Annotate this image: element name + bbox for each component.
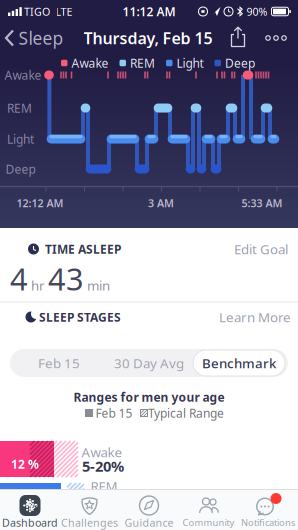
staticText: Feb 15 (38, 354, 80, 372)
staticText: Awake (81, 443, 122, 461)
staticText: Notifications (241, 516, 295, 529)
staticText: Awake (71, 55, 108, 71)
button[interactable]: Benchmark (192, 349, 286, 377)
button[interactable]: Guidance (119, 490, 178, 530)
staticText: TIGO (24, 4, 50, 19)
staticText: Light (7, 131, 34, 147)
staticText: Thursday, Feb 15 (83, 27, 212, 49)
button[interactable]: Edit Goal (229, 237, 293, 261)
staticText: Deep (5, 161, 35, 177)
button[interactable]: Feb 15 (13, 349, 105, 377)
staticText: Typical Range (148, 405, 224, 421)
staticText: REM (7, 100, 32, 116)
button[interactable]: Community (179, 490, 238, 530)
staticText: 30 Day Avg (114, 354, 184, 372)
staticText: 11:12 AM (122, 3, 175, 19)
button[interactable]: Back (0, 23, 73, 53)
staticText: Sleep (18, 26, 63, 49)
button[interactable]: Learn More (219, 305, 291, 329)
staticText: Awake (4, 67, 41, 83)
staticText: hr (31, 276, 45, 294)
staticText: 12 % (11, 456, 39, 472)
staticText: 12:12 AM (16, 196, 63, 210)
staticText: REM (90, 477, 117, 495)
staticText: SLEEP STAGES (39, 309, 121, 325)
staticText: TIME ASLEEP (45, 241, 121, 257)
staticText: 3 AM (148, 196, 174, 210)
staticText: Learn More (219, 308, 291, 326)
button[interactable]: Notifications (238, 490, 297, 530)
staticText: LTE (55, 4, 72, 19)
button[interactable]: Dashboard (0, 490, 59, 530)
staticText: min (87, 276, 110, 294)
staticText: 5:33 AM (241, 196, 282, 210)
button[interactable]: Challenges (60, 490, 119, 530)
button[interactable]: 30 Day Avg (103, 349, 195, 377)
staticText: Benchmark (202, 354, 276, 372)
staticText: Ranges for men your age (73, 389, 224, 405)
staticText: Feb 15 (95, 405, 132, 421)
staticText: 4 (10, 258, 28, 299)
staticText: 43 (48, 258, 84, 299)
button[interactable]: Share (223, 22, 253, 52)
staticText: 90% (246, 4, 267, 19)
staticText: 5-20% (82, 456, 124, 476)
staticText: Challenges (61, 515, 118, 530)
staticText: REM (130, 55, 155, 71)
staticText: Deep (225, 55, 255, 71)
staticText: Edit Goal (234, 240, 288, 258)
button[interactable]: More (259, 23, 293, 53)
staticText: Light (176, 55, 203, 71)
staticText: Dashboard (2, 515, 58, 530)
staticText: Guidance (124, 515, 173, 530)
staticText: Community (182, 516, 234, 529)
